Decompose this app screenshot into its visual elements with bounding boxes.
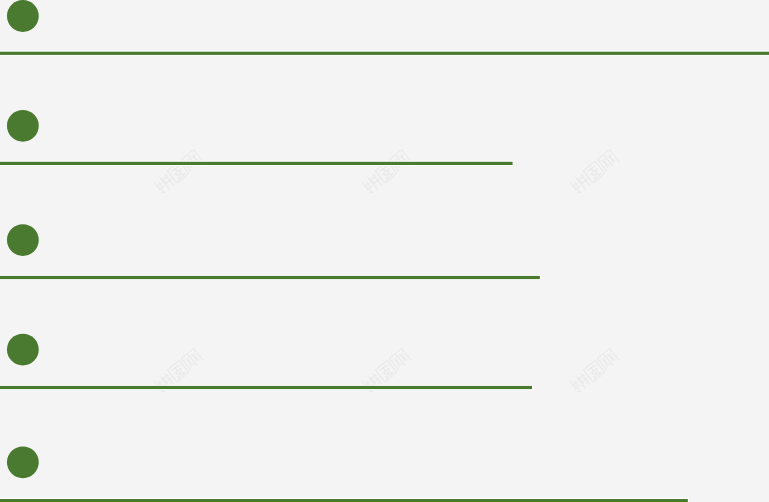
button[interactable]: List item 5	[0, 440, 769, 502]
button[interactable]: List item 1	[0, 0, 769, 59]
button[interactable]: List item 3	[0, 218, 769, 283]
button[interactable]: List item 4	[0, 328, 769, 394]
button[interactable]: List item 2	[0, 104, 769, 169]
